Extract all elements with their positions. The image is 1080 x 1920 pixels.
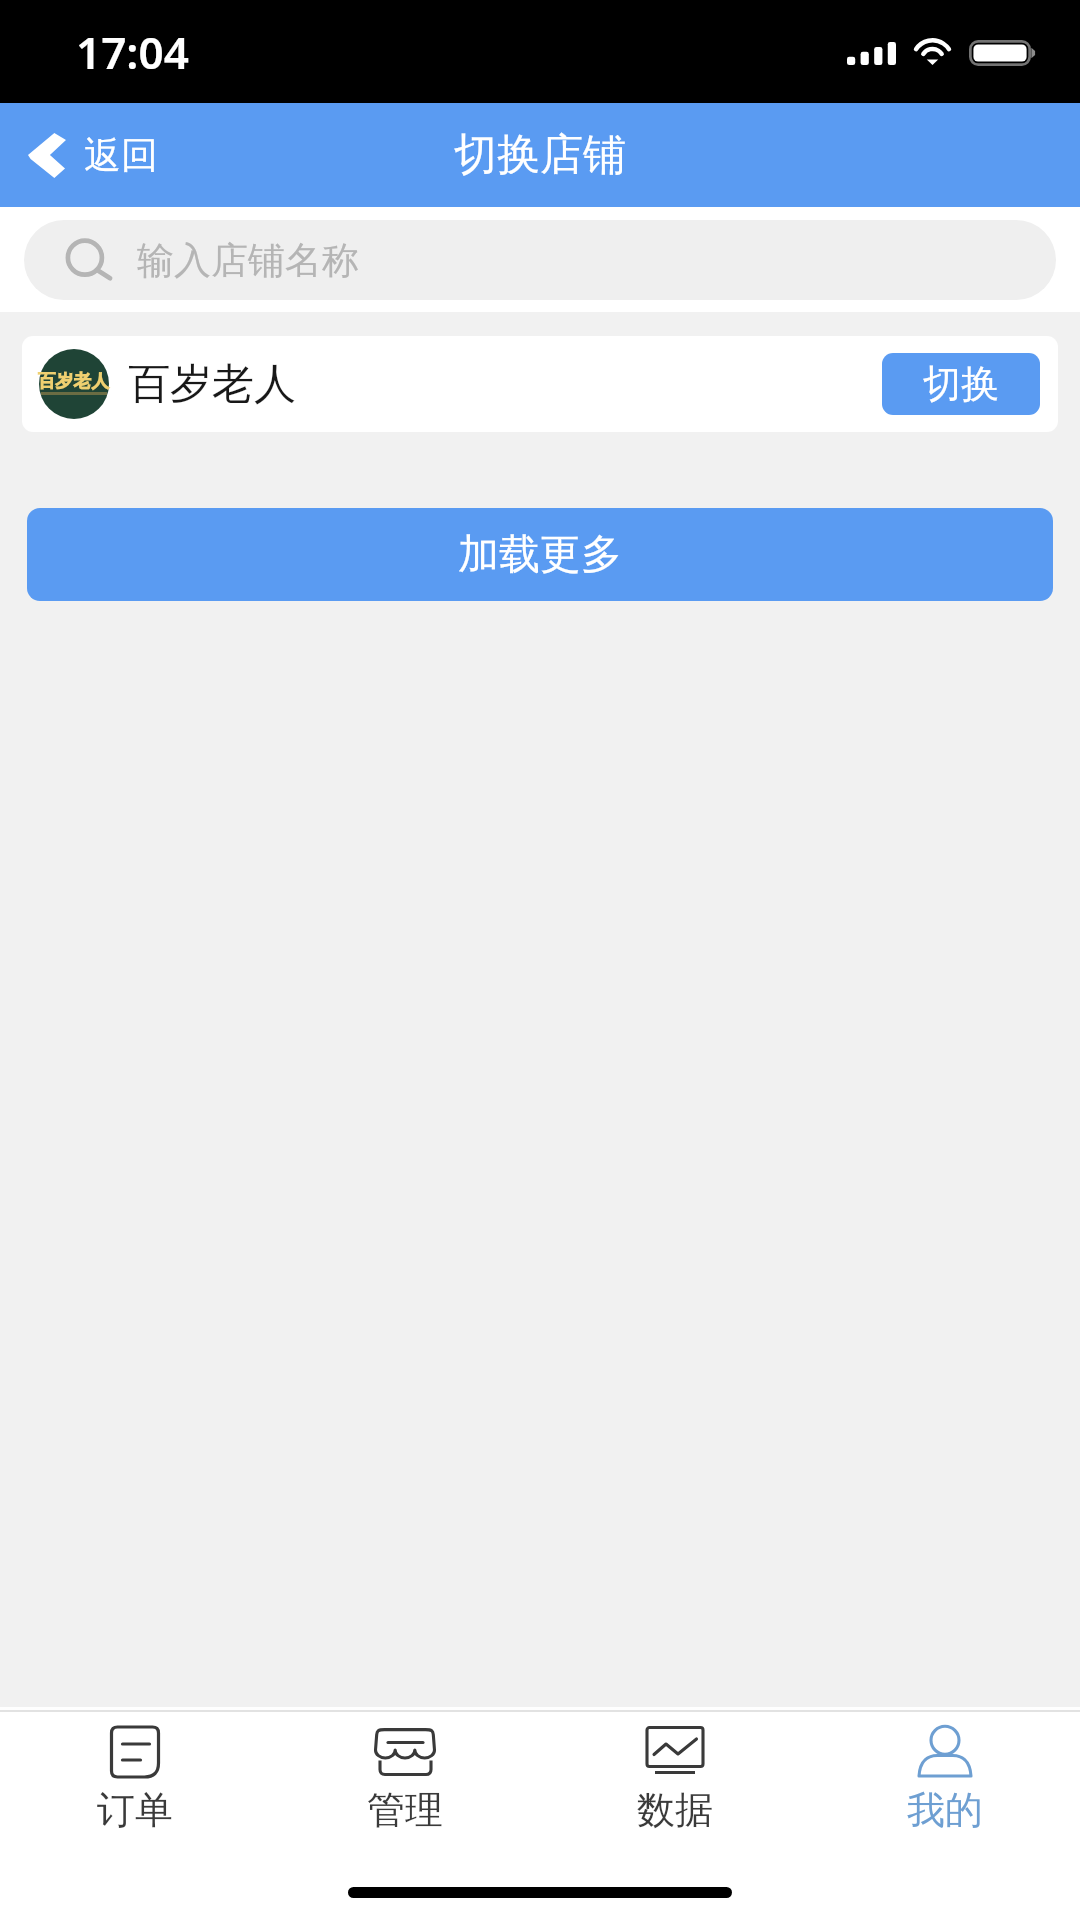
- staticText: 加载更多: [458, 529, 622, 581]
- staticText: 返回: [84, 132, 158, 179]
- button[interactable]: 百岁老人: [22, 336, 1058, 432]
- button[interactable]: 切换: [882, 353, 1040, 415]
- staticText: 输入店铺名称: [137, 237, 359, 284]
- button[interactable]: 订单: [0, 1712, 270, 1834]
- button[interactable]: 输入店铺名称: [24, 220, 1056, 300]
- staticText: 切换: [923, 360, 999, 408]
- staticText: 我的: [907, 1786, 983, 1834]
- button[interactable]: 加载更多: [27, 508, 1053, 601]
- staticText: 订单: [97, 1786, 173, 1834]
- button[interactable]: 返回: [0, 118, 178, 193]
- staticText: 17:04: [76, 22, 189, 82]
- staticText: 数据: [637, 1786, 713, 1834]
- staticText: 管理: [367, 1786, 443, 1834]
- button[interactable]: 管理: [270, 1712, 540, 1834]
- button[interactable]: 我的: [810, 1712, 1080, 1834]
- staticText: 百岁老人: [128, 358, 296, 411]
- button[interactable]: 数据: [540, 1712, 810, 1834]
- staticText: 切换店铺: [454, 128, 626, 182]
- staticText: 百岁老人: [38, 370, 110, 392]
